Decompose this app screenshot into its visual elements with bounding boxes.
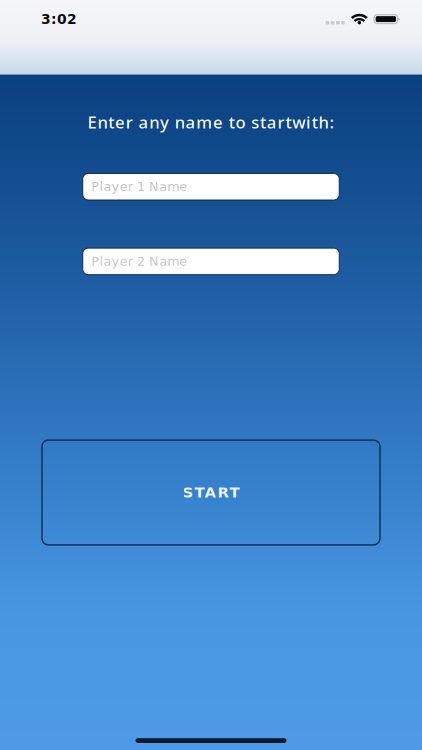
staticText: 3:02 (41, 11, 77, 27)
button[interactable]: Player 2 Name (83, 248, 339, 275)
staticText: Enter any name to startwith: (88, 111, 334, 133)
staticText: Player 1 Name (91, 179, 187, 194)
staticText: START (182, 484, 239, 501)
staticText: Player 2 Name (91, 254, 187, 269)
button[interactable]: Player 1 Name (83, 173, 339, 200)
button[interactable]: START (42, 440, 380, 545)
